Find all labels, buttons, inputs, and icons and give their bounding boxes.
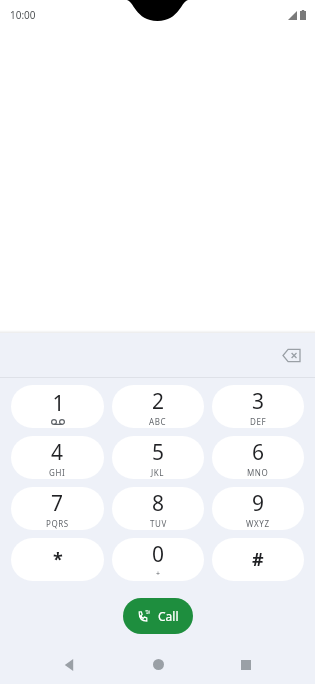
button[interactable]: * — [11, 538, 104, 581]
staticText: + — [156, 569, 161, 579]
staticText: 10:00 — [10, 8, 36, 22]
staticText: 0 — [152, 540, 165, 569]
staticText: # — [252, 547, 264, 572]
staticText: PQRS — [46, 518, 69, 529]
staticText: 8 — [152, 489, 165, 518]
button[interactable]: Backspace — [273, 337, 309, 373]
staticText: 9 — [252, 489, 265, 518]
staticText: * — [53, 547, 63, 572]
staticText: Call — [158, 608, 179, 624]
staticText: 1 — [52, 389, 65, 418]
staticText: 2 — [152, 387, 165, 416]
button[interactable]: 9 — [212, 487, 304, 530]
staticText: 4 — [51, 438, 64, 467]
staticText: JKL — [151, 467, 165, 478]
button[interactable]: Call — [123, 598, 193, 634]
staticText: 3 — [252, 387, 265, 416]
button[interactable]: Recents — [226, 645, 266, 684]
button[interactable]: 7 — [11, 487, 104, 530]
staticText: MNO — [247, 467, 269, 478]
button[interactable]: 4 — [11, 436, 104, 479]
button[interactable]: # — [212, 538, 304, 581]
staticText: 5 — [152, 438, 165, 467]
button[interactable]: 5 — [112, 436, 204, 479]
staticText: DEF — [250, 416, 267, 427]
staticText: 7 — [51, 489, 64, 518]
staticText: GHI — [49, 467, 66, 478]
button[interactable]: 8 — [112, 487, 204, 530]
staticText: WXYZ — [246, 518, 270, 529]
staticText: ABC — [149, 416, 167, 427]
button[interactable]: Home — [138, 645, 178, 684]
button[interactable]: 1 — [11, 385, 104, 428]
button[interactable]: Back — [49, 645, 89, 684]
staticText: 6 — [252, 438, 265, 467]
button[interactable]: 3 — [212, 385, 304, 428]
button[interactable]: 0 — [112, 538, 204, 581]
button[interactable]: 2 — [112, 385, 204, 428]
staticText: TUV — [150, 518, 167, 529]
button[interactable]: 6 — [212, 436, 304, 479]
